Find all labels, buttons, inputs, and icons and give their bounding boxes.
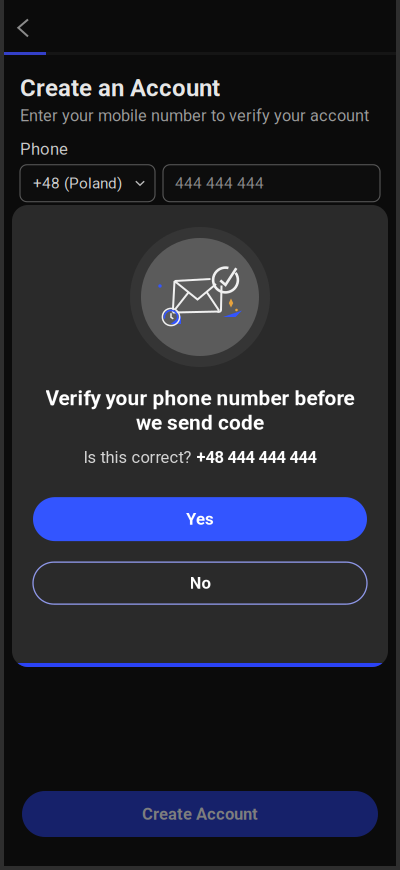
button[interactable]: Create Account: [22, 791, 378, 837]
staticText: Create Account: [142, 804, 258, 824]
staticText: No: [189, 573, 210, 593]
staticText: Enter your mobile number to verify your …: [20, 106, 369, 125]
staticText: +48 (Poland): [33, 174, 122, 192]
staticText: Verify your phone number before: [45, 386, 354, 410]
staticText: we send code: [136, 410, 264, 435]
staticText: Phone: [20, 139, 68, 159]
button[interactable]: No: [33, 562, 367, 604]
staticText: +48 444 444 444: [196, 448, 316, 467]
button[interactable]: Yes: [33, 497, 367, 541]
staticText: 444 444 444: [175, 174, 264, 192]
button[interactable]: Back: [4, 5, 43, 47]
staticText: Is this correct?: [83, 448, 191, 467]
staticText: Yes: [186, 509, 214, 529]
staticText: Create an Account: [20, 74, 220, 102]
